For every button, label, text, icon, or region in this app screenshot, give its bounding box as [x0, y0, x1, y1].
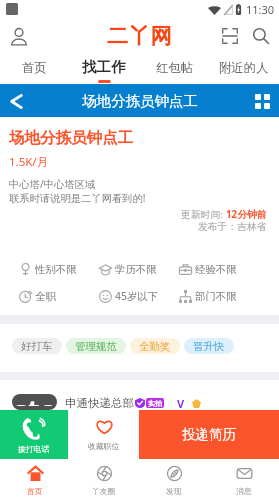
button[interactable]: 红包帖	[139, 54, 209, 84]
staticText: 申通快递总部	[65, 396, 134, 410]
staticText: 全勤奖	[139, 340, 171, 353]
staticText: 管理规范	[75, 340, 117, 353]
button[interactable]: 首页	[0, 54, 69, 84]
button[interactable]: Back	[2, 87, 30, 115]
staticText: 经验不限	[195, 263, 237, 276]
button[interactable]: 投递简历	[139, 410, 279, 459]
button[interactable]: 附近的人	[209, 54, 279, 84]
staticText: 12分钟前	[226, 208, 267, 221]
staticText: 晋升快	[193, 340, 225, 353]
button[interactable]: 发现	[139, 459, 209, 500]
staticText: 全职	[35, 290, 56, 303]
staticText: 1.5K/月	[9, 154, 49, 170]
button[interactable]: 拨打电话	[0, 410, 68, 459]
staticText: 找工作	[82, 58, 126, 76]
button[interactable]: Profile	[5, 22, 33, 50]
button[interactable]: 管理规范	[66, 338, 126, 354]
staticText: 首页	[22, 60, 47, 75]
staticText: 首页	[27, 486, 43, 496]
staticText: 中心塔/中心塔区域	[9, 177, 96, 191]
staticText: 投递简历	[182, 426, 236, 443]
button[interactable]: Grid menu	[249, 88, 275, 114]
staticText: 更新时间:	[181, 208, 226, 221]
staticText: 发布于：吉林省	[198, 221, 267, 233]
button[interactable]: 好打车	[12, 338, 62, 354]
button[interactable]: Scan	[217, 23, 243, 49]
button[interactable]: 丫友圈	[69, 459, 139, 500]
button[interactable]: sto	[0, 394, 279, 410]
staticText: 拨打电话	[18, 444, 50, 454]
button[interactable]: 首页	[0, 459, 69, 500]
staticText: 好打车	[21, 340, 53, 353]
staticText: 附近的人	[219, 60, 269, 75]
staticText: 场地分拣员钟点工	[82, 92, 198, 110]
button[interactable]: 全勤奖	[130, 338, 180, 354]
staticText: 联系时请说明是二丫网看到的!	[9, 191, 146, 205]
staticText: 部门不限	[195, 290, 237, 303]
button[interactable]: Search	[248, 23, 274, 49]
staticText: 消息	[236, 486, 252, 496]
button[interactable]: 消息	[209, 459, 279, 500]
staticText: V	[177, 396, 185, 410]
button[interactable]: 找工作	[69, 54, 139, 84]
staticText: 实拍	[148, 399, 162, 408]
staticText: 发现	[166, 486, 182, 496]
staticText: 场地分拣员钟点工	[9, 128, 133, 148]
staticText: sto	[13, 394, 57, 406]
staticText: 二丫网	[107, 23, 173, 49]
button[interactable]: 晋升快	[184, 338, 234, 354]
staticText: 红包帖	[156, 60, 193, 75]
staticText: 丫友圈	[92, 486, 116, 496]
staticText: 11:30	[246, 2, 275, 17]
staticText: 45岁以下	[115, 289, 159, 303]
button[interactable]: 收藏职位	[68, 410, 139, 459]
staticText: 性别不限	[35, 263, 77, 276]
staticText: 学历不限	[115, 263, 157, 276]
staticText: 收藏职位	[88, 441, 120, 451]
